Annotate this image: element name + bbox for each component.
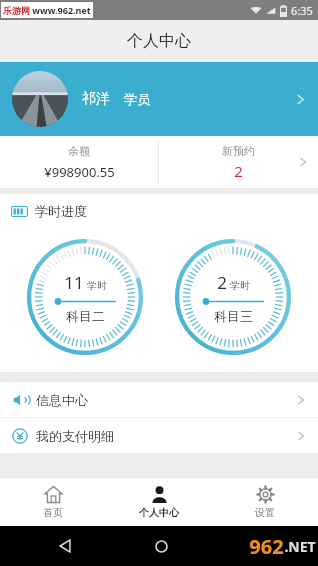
- button[interactable]: 首页: [0, 478, 106, 526]
- staticText: 信息中心: [36, 392, 88, 408]
- staticText: 6:35: [291, 3, 313, 18]
- button[interactable]: 我的支付明细: [0, 418, 318, 453]
- staticText: 祁洋: [82, 90, 110, 108]
- button[interactable]: 新预约: [159, 136, 318, 188]
- other: Back: [58, 539, 72, 553]
- button[interactable]: 信息中心: [0, 382, 318, 417]
- staticText: 乐游网: [3, 5, 30, 16]
- button[interactable]: 祁洋: [0, 62, 318, 136]
- button[interactable]: 设置: [212, 478, 318, 526]
- staticText: 学时: [87, 279, 107, 292]
- staticText: 设置: [255, 506, 275, 519]
- staticText: .NET: [284, 537, 316, 556]
- staticText: 11: [64, 271, 84, 294]
- button[interactable]: 个人中心: [106, 478, 212, 526]
- staticText: 学时进度: [35, 203, 87, 219]
- staticText: 新预约: [222, 144, 255, 158]
- staticText: 余额: [68, 144, 90, 158]
- staticText: 学时: [230, 279, 250, 292]
- staticText: 个人中心: [139, 506, 179, 519]
- staticText: 2: [217, 271, 227, 294]
- staticText: 我的支付明细: [36, 428, 114, 444]
- staticText: 2: [234, 161, 243, 181]
- staticText: 学员: [124, 91, 150, 107]
- button[interactable]: 余额: [0, 136, 158, 188]
- staticText: ¥998900.55: [44, 163, 115, 181]
- staticText: 科目三: [214, 308, 253, 324]
- staticText: 科目二: [66, 308, 105, 324]
- staticText: 962: [249, 533, 284, 560]
- staticText: www.962.net: [32, 4, 91, 16]
- other: Home: [155, 540, 168, 553]
- staticText: 个人中心: [127, 31, 191, 51]
- staticText: 首页: [43, 506, 63, 519]
